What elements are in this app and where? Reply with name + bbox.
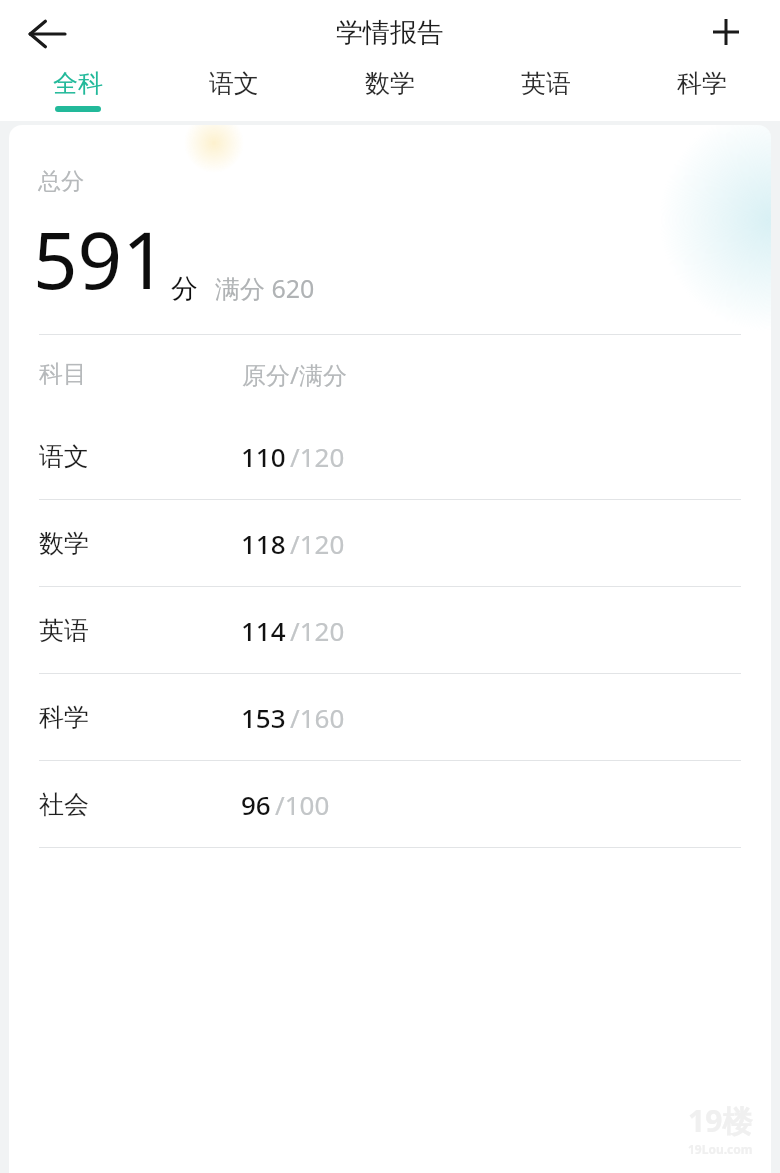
staticText: 数学 (365, 68, 415, 99)
button[interactable]: 科学 (9, 674, 771, 760)
staticText: /100 (275, 787, 330, 822)
button[interactable]: 英语 (9, 587, 771, 673)
staticText: 118 (241, 526, 286, 561)
staticText: 19楼 (688, 1100, 753, 1141)
staticText: 英语 (39, 615, 89, 646)
staticText: 语文 (39, 441, 89, 472)
button[interactable]: 英语 (468, 68, 624, 121)
staticText: 114 (241, 613, 286, 648)
staticText: 总分 (38, 167, 84, 196)
staticText: 学情报告 (336, 16, 444, 50)
staticText: 满分 620 (215, 271, 315, 305)
staticText: 科目 (39, 359, 87, 389)
staticText: 分 (171, 272, 198, 306)
staticText: 19Lou.com (688, 1141, 753, 1157)
staticText: 科学 (39, 702, 89, 733)
staticText: /160 (290, 700, 345, 735)
button[interactable]: 语文 (156, 68, 312, 121)
button[interactable]: 数学 (312, 68, 468, 121)
button[interactable]: 科学 (624, 68, 780, 121)
staticText: 英语 (521, 68, 571, 99)
staticText: 96 (241, 787, 271, 822)
button[interactable]: 社会 (9, 761, 771, 847)
button[interactable]: Add (697, 3, 755, 61)
staticText: /120 (290, 526, 345, 561)
staticText: 社会 (39, 789, 89, 820)
button[interactable]: 数学 (9, 500, 771, 586)
staticText: 科学 (677, 68, 727, 99)
button[interactable]: 语文 (9, 413, 771, 499)
staticText: 语文 (209, 68, 259, 99)
staticText: 数学 (39, 528, 89, 559)
staticText: 全科 (53, 68, 103, 99)
button[interactable]: Back (14, 1, 80, 67)
button[interactable]: 全科 (0, 68, 156, 121)
staticText: 591 (33, 206, 167, 312)
staticText: /120 (290, 613, 345, 648)
staticText: 原分/满分 (242, 358, 347, 391)
staticText: /120 (290, 439, 345, 474)
staticText: 153 (241, 700, 286, 735)
staticText: 110 (241, 439, 286, 474)
